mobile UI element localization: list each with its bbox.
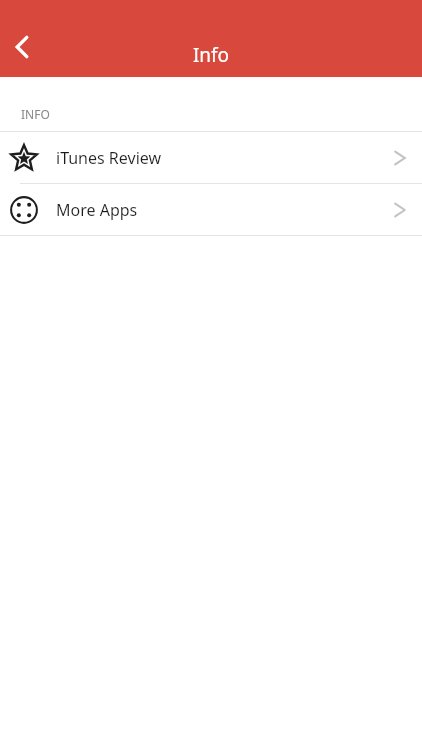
staticText: More Apps <box>56 199 138 221</box>
button[interactable]: Back <box>0 25 44 69</box>
staticText: iTunes Review <box>56 147 162 169</box>
button[interactable]: iTunes Review <box>0 132 422 183</box>
staticText: INFO <box>21 106 50 122</box>
staticText: Info <box>0 42 422 68</box>
button[interactable]: More Apps <box>0 184 422 235</box>
